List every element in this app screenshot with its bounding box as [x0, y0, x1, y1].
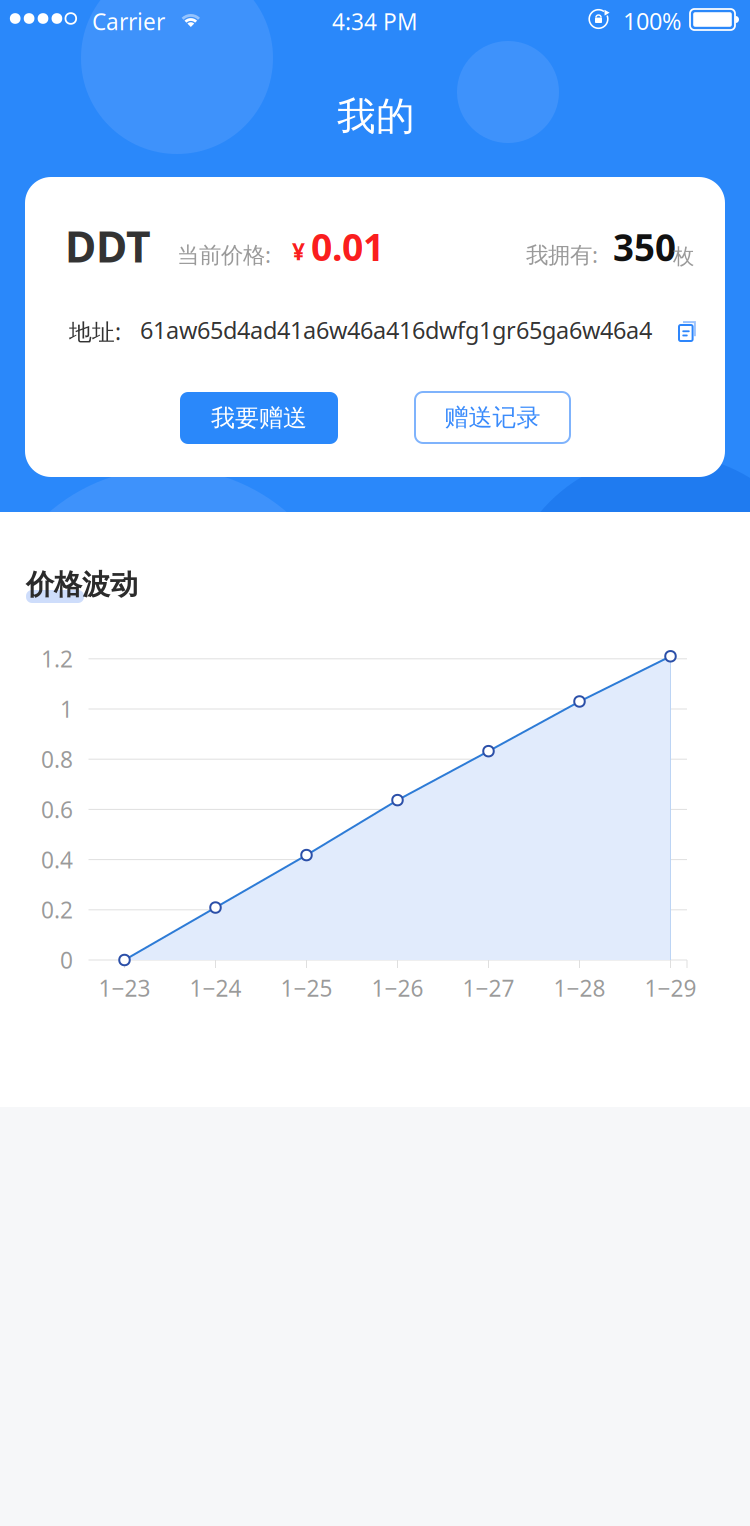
staticText: 61aw65d4ad41a6w46a416dwfg1gr65ga6w46a4: [140, 314, 652, 346]
staticText: 我拥有:: [526, 239, 604, 269]
staticText: 当前价格:: [177, 239, 277, 269]
staticText: 0.4: [41, 844, 73, 875]
button[interactable]: Copy address: [679, 321, 696, 341]
staticText: ¥: [292, 236, 305, 267]
staticText: 我要赠送: [211, 403, 307, 433]
button[interactable]: 我要赠送: [180, 392, 338, 444]
staticText: 赠送记录: [444, 402, 540, 433]
staticText: 1−27: [462, 973, 514, 1003]
button[interactable]: 赠送记录: [415, 392, 570, 443]
staticText: 1−29: [644, 973, 696, 1003]
staticText: 我的: [337, 92, 415, 141]
staticText: 350: [613, 222, 676, 272]
staticText: 0.01: [311, 221, 384, 272]
staticText: 0.6: [41, 794, 73, 825]
staticText: 100%: [623, 5, 682, 37]
staticText: 地址:: [69, 316, 127, 347]
staticText: 1−25: [280, 973, 332, 1003]
staticText: 0.2: [41, 894, 73, 925]
staticText: 1−26: [371, 973, 423, 1003]
staticText: 1: [60, 694, 73, 724]
staticText: 1−23: [98, 973, 150, 1003]
staticText: 1.2: [41, 643, 73, 674]
staticText: 价格波动: [26, 567, 138, 602]
staticText: 枚: [673, 243, 694, 270]
staticText: 1−24: [189, 973, 241, 1003]
staticText: Carrier: [92, 6, 165, 37]
staticText: 1−28: [553, 973, 605, 1003]
staticText: 0: [60, 945, 73, 975]
staticText: DDT: [65, 217, 151, 275]
staticText: 4:34 PM: [332, 6, 418, 37]
staticText: 0.8: [41, 744, 73, 775]
